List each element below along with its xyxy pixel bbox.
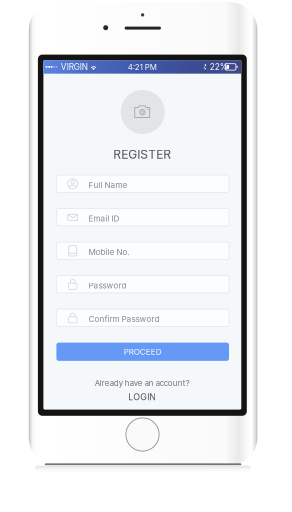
staticText: Mobile No. <box>88 247 129 257</box>
staticText: Confirm Password <box>88 314 159 324</box>
button[interactable]: Mobile No. <box>56 242 229 259</box>
staticText: LOGIN <box>128 392 156 402</box>
staticText: 22% <box>210 62 228 72</box>
staticText: REGISTER <box>113 147 171 162</box>
button[interactable]: Full Name <box>56 175 229 192</box>
staticText: Already have an account? <box>95 378 190 388</box>
button[interactable]: Confirm Password <box>56 309 229 326</box>
button[interactable]: PROCEED <box>56 343 229 361</box>
staticText: Password <box>88 281 126 290</box>
staticText: Full Name <box>88 180 127 190</box>
staticText: PROCEED <box>124 347 162 357</box>
staticText: 4:21 PM <box>128 62 157 72</box>
staticText: VIRGIN <box>61 62 88 72</box>
button[interactable]: Email ID <box>56 209 229 226</box>
button[interactable]: LOGIN <box>43 392 241 403</box>
button[interactable]: Password <box>56 276 229 293</box>
staticText: Email ID <box>88 214 119 223</box>
